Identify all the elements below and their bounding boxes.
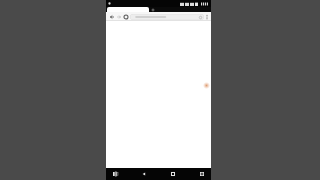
button[interactable]: Forward <box>115 13 122 21</box>
button[interactable] <box>130 14 204 20</box>
button[interactable]: Back <box>138 168 150 180</box>
button[interactable]: Reload <box>122 13 129 21</box>
button[interactable]: New tab <box>151 8 155 12</box>
button[interactable] <box>107 7 149 12</box>
button[interactable]: Recent apps <box>109 168 121 180</box>
button[interactable]: More options <box>204 12 210 21</box>
button[interactable]: Screenshot <box>196 168 208 180</box>
button[interactable]: Home <box>167 168 179 180</box>
button[interactable]: Back <box>108 13 115 21</box>
